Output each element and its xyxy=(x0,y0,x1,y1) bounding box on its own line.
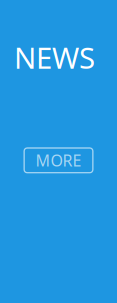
staticText: NEWS xyxy=(14,38,95,77)
staticText: MORE xyxy=(35,150,81,171)
button[interactable]: MORE xyxy=(23,147,93,173)
